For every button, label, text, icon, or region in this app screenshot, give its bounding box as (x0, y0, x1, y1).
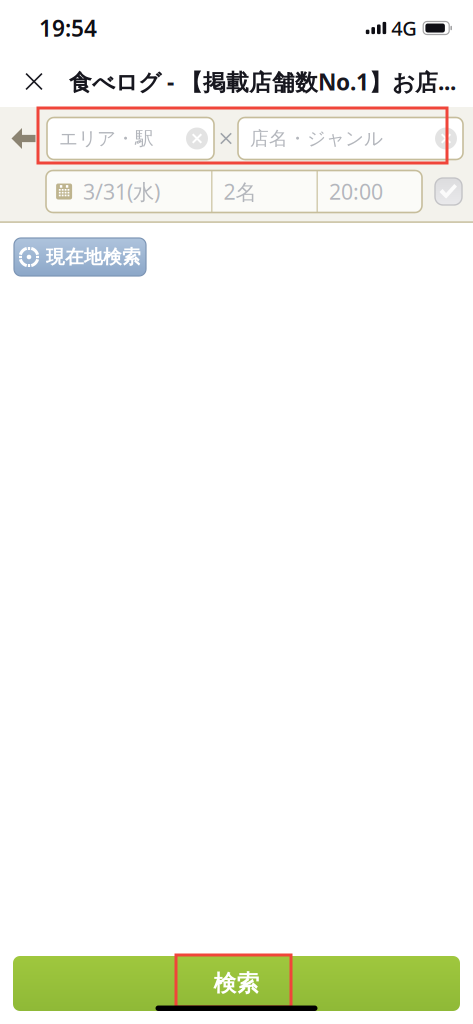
staticText: 食べログ - 【掲載店舗数No.1】お店探… (69, 66, 473, 97)
button[interactable]: Back (0, 117, 47, 159)
button[interactable]: Clear text (181, 120, 213, 156)
staticText: 店名・ジャンル (250, 127, 383, 150)
button[interactable]: Clear text (430, 120, 462, 156)
staticText: 現在地検索 (46, 245, 141, 268)
button[interactable]: 店名・ジャンル (238, 117, 463, 159)
staticText: 19:54 (39, 13, 97, 43)
staticText: 検索 (213, 970, 259, 997)
button[interactable]: エリア・駅 (47, 117, 214, 159)
staticText: 2名 (223, 177, 256, 206)
button[interactable]: 20:00 (318, 170, 422, 212)
button[interactable]: 3/31(水) (46, 170, 211, 212)
button[interactable]: Toggle reservation search (433, 176, 464, 207)
button[interactable]: Close (8, 56, 60, 107)
button[interactable]: 2名 (212, 170, 316, 212)
button[interactable]: 検索 (13, 956, 460, 1011)
staticText: エリア・駅 (59, 127, 154, 150)
staticText: 3/31(水) (83, 177, 160, 206)
staticText: 20:00 (329, 177, 383, 206)
button[interactable]: 現在地検索 (14, 238, 146, 276)
staticText: 4G (391, 15, 417, 41)
